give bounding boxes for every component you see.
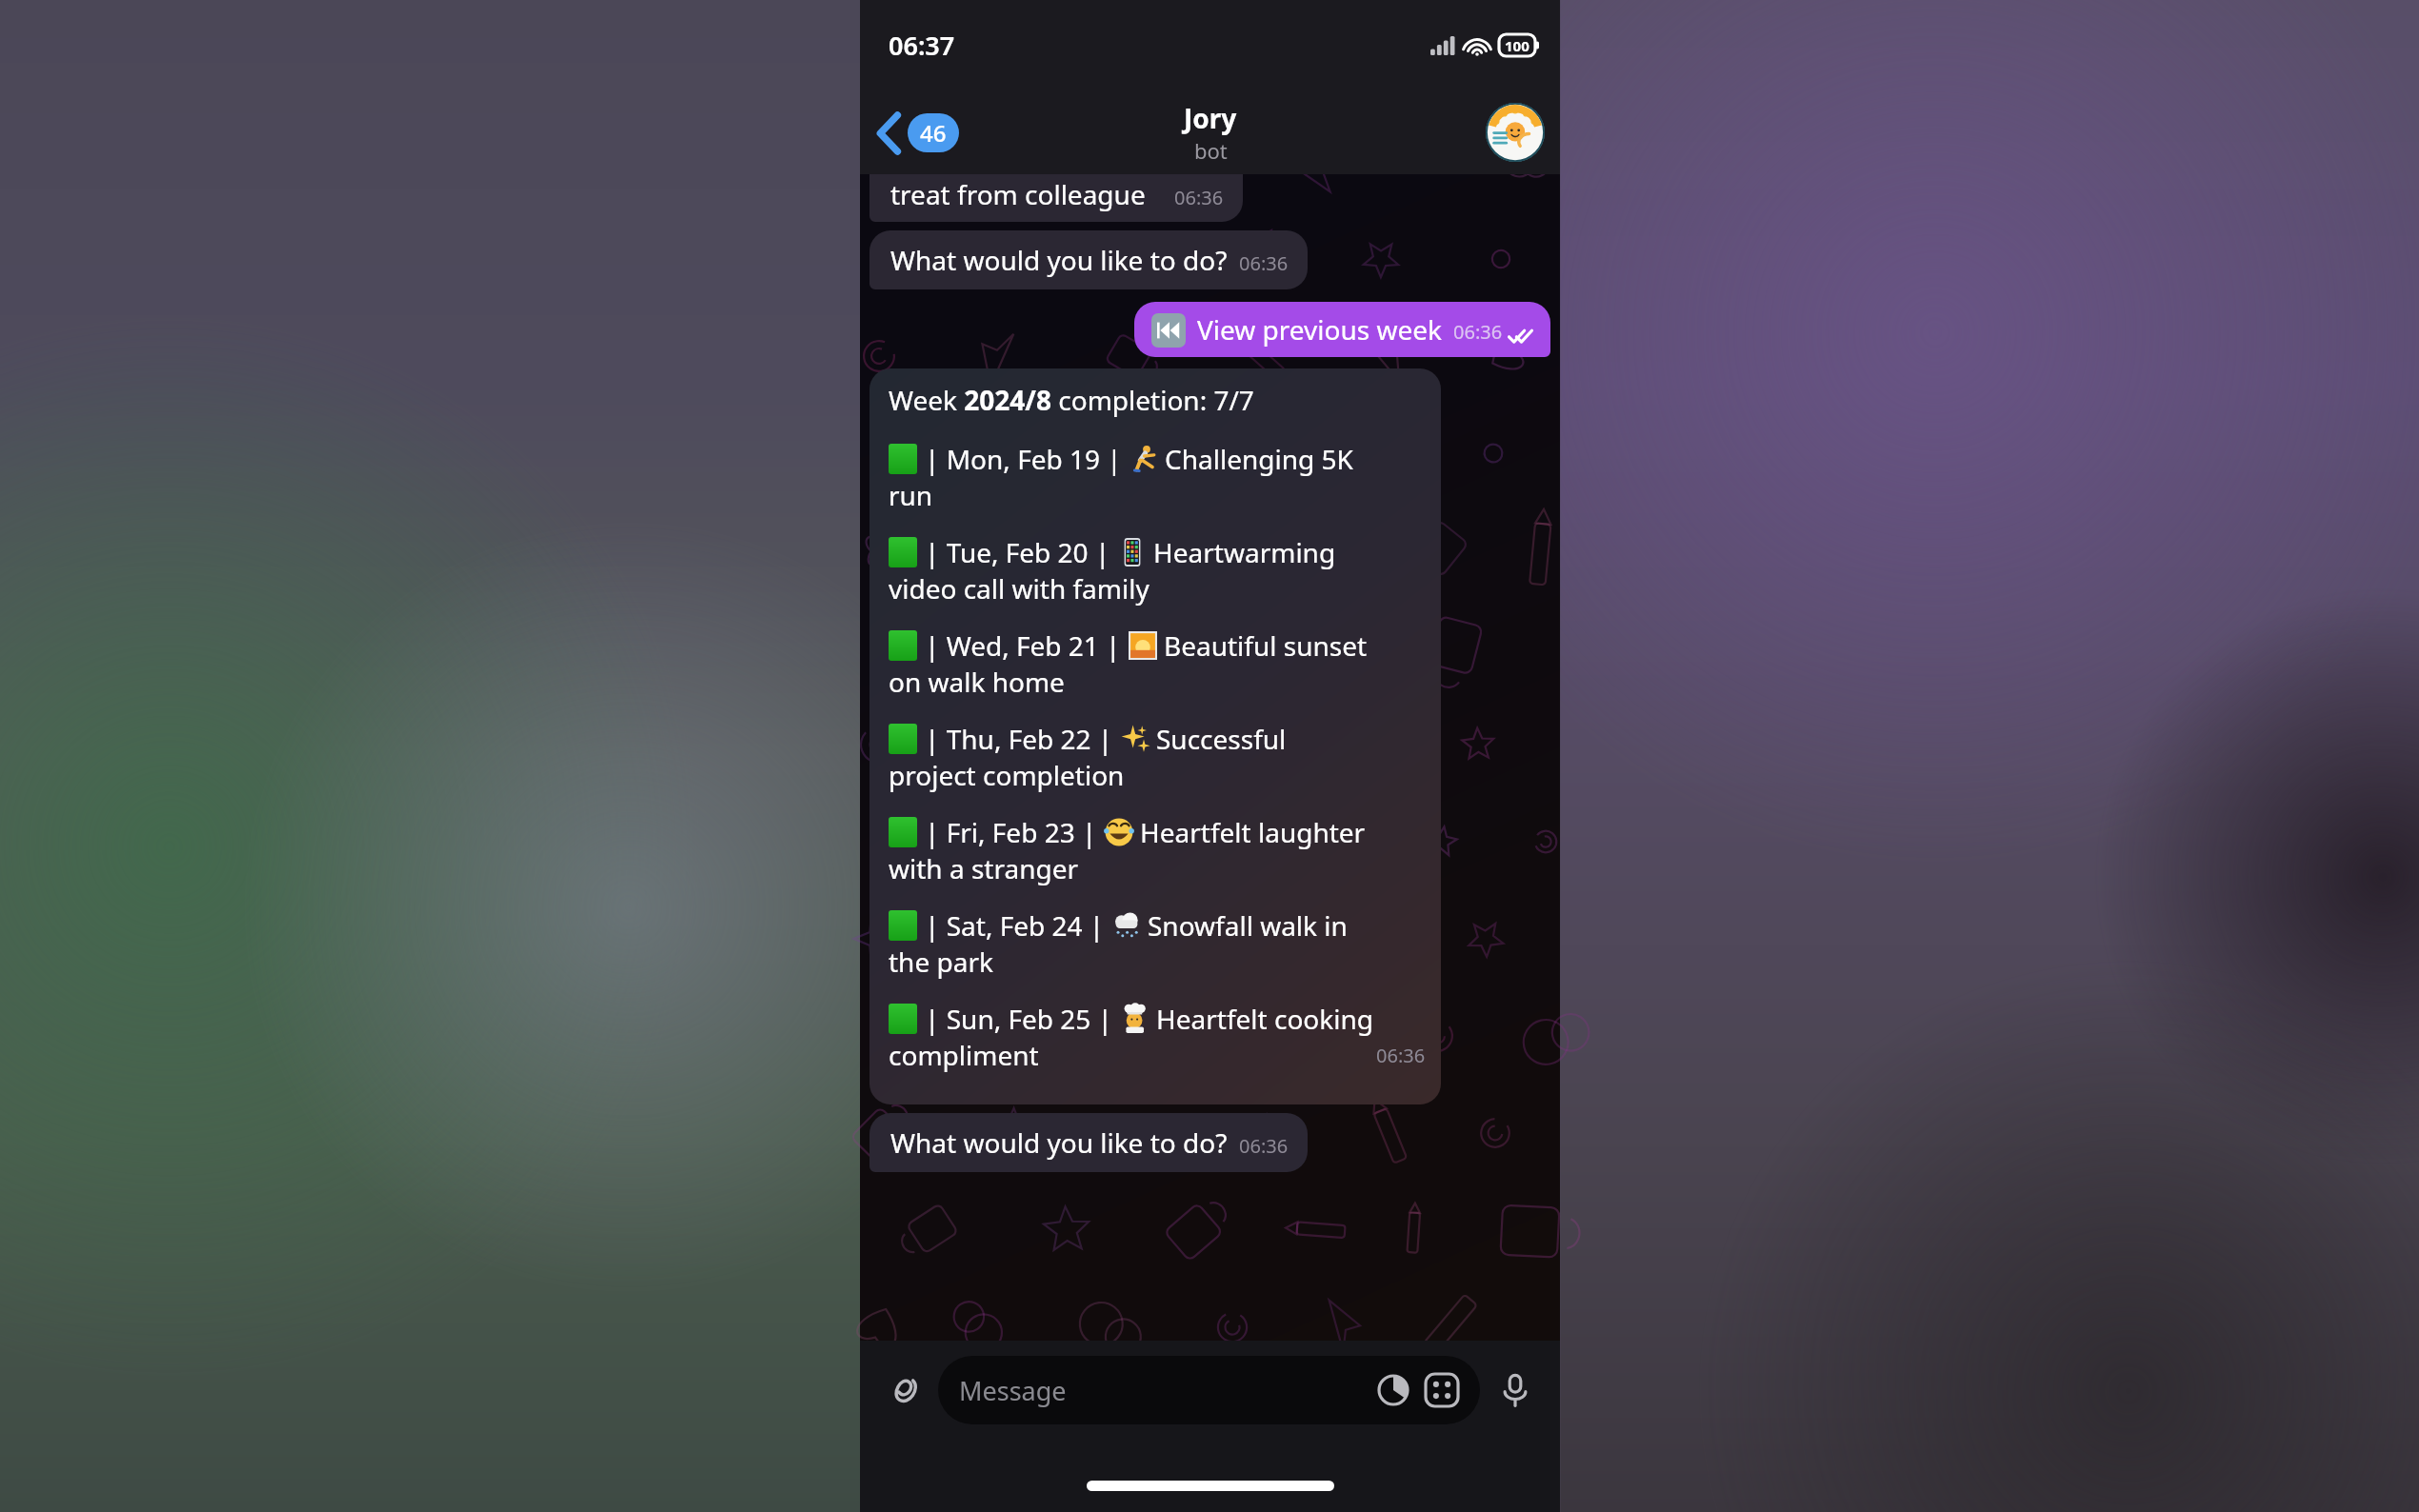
staticText: Heartfelt cooking [1156,1001,1373,1037]
staticText: 06:36 [1239,250,1289,276]
staticText: compliment [889,1037,1039,1073]
staticText: | Mon, Feb 19 | [925,441,1122,477]
staticText: 06:37 [889,28,955,63]
staticText: video call with family [889,570,1150,607]
staticText: | Sun, Feb 25 | [925,1001,1113,1037]
staticText: 06:36 [1239,1133,1289,1159]
staticText: 06:36 [1174,185,1224,210]
staticText: 06:36 [1453,319,1503,345]
staticText: treat from colleague [890,176,1146,212]
staticText: 06:36 [1376,1043,1426,1068]
button[interactable]: treat from colleague [870,174,1243,222]
button[interactable]: Attach file [877,1363,932,1418]
staticText: bot [1194,136,1228,165]
staticText: Jory [1184,100,1237,136]
button[interactable]: What would you like to do? [870,230,1308,289]
staticText: Beautiful sunset [1164,627,1368,664]
staticText: project completion [889,757,1125,793]
staticText: What would you like to do? [890,1124,1228,1161]
staticText: | Sat, Feb 24 | [925,907,1105,944]
staticText: | Tue, Feb 20 | [925,534,1110,570]
staticText: the park [889,944,993,980]
staticText: Heartfelt laughter [1140,814,1366,850]
staticText: Message [959,1373,1377,1408]
staticText: Successful [1156,721,1287,757]
staticText: with a stranger [889,850,1079,886]
staticText: on walk home [889,664,1065,700]
staticText: View previous week [1197,311,1442,348]
button[interactable]: Week 2024/8 completion: 7/7 [870,368,1441,1104]
button[interactable]: Profile photo [1486,103,1545,162]
staticText: Challenging 5K [1165,441,1353,477]
staticText: run [889,477,933,513]
staticText: Snowfall walk in [1148,907,1348,944]
button[interactable]: View previous week [1134,302,1550,357]
staticText: | Fri, Feb 23 | [925,814,1097,850]
staticText: | Wed, Feb 21 | [925,627,1121,664]
staticText: Week 2024/8 completion: 7/7 [889,382,1254,418]
button[interactable]: What would you like to do? [870,1113,1308,1172]
staticText: 100 [1505,36,1529,55]
staticText: What would you like to do? [890,242,1228,278]
staticText: 46 [920,117,947,149]
staticText: Heartwarming [1153,534,1336,570]
staticText: | Thu, Feb 22 | [925,721,1113,757]
button[interactable]: Back, 46 unread chats [873,108,965,158]
button[interactable]: Record voice message [1488,1363,1543,1418]
button[interactable]: Message [938,1356,1480,1424]
